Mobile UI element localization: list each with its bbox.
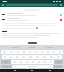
button[interactable] — [41, 55, 48, 59]
button[interactable]: Enter — [53, 65, 63, 68]
button[interactable] — [48, 55, 55, 59]
button[interactable] — [57, 50, 63, 54]
button[interactable] — [39, 50, 45, 54]
button[interactable] — [2, 23, 62, 29]
button[interactable] — [55, 55, 62, 59]
button[interactable] — [1, 50, 8, 54]
button[interactable] — [30, 60, 36, 64]
button[interactable] — [18, 60, 24, 64]
button[interactable] — [24, 60, 30, 64]
button[interactable]: Backspace — [54, 60, 63, 64]
button[interactable] — [11, 60, 18, 64]
button[interactable]: Flag — [60, 19, 62, 21]
button[interactable] — [34, 55, 41, 59]
button[interactable]: Top app bar — [0, 3, 64, 7]
button[interactable]: Back — [12, 69, 18, 72]
button[interactable]: Suggestion chip — [28, 42, 37, 44]
button[interactable] — [8, 55, 14, 59]
button[interactable] — [8, 50, 15, 54]
button[interactable] — [27, 50, 33, 54]
button[interactable]: Home — [29, 69, 35, 72]
button[interactable] — [2, 55, 8, 59]
button[interactable]: Emoji — [12, 65, 18, 68]
button[interactable] — [27, 55, 34, 59]
button[interactable]: Flag — [2, 17, 62, 22]
button[interactable] — [2, 31, 62, 32]
button[interactable] — [48, 60, 54, 64]
button[interactable]: Period — [47, 65, 53, 68]
button[interactable]: Recents — [47, 69, 53, 72]
button[interactable]: Space — [18, 65, 47, 68]
button[interactable]: Shift — [1, 60, 11, 64]
button[interactable] — [45, 50, 51, 54]
button[interactable] — [51, 50, 57, 54]
button[interactable] — [33, 50, 39, 54]
button[interactable] — [15, 50, 21, 54]
button[interactable]: Symbols — [1, 65, 12, 68]
button[interactable] — [14, 55, 20, 59]
button[interactable] — [42, 60, 48, 64]
button[interactable] — [36, 60, 42, 64]
button[interactable] — [21, 50, 27, 54]
button[interactable]: Attach — [2, 12, 62, 17]
button[interactable] — [20, 55, 27, 59]
